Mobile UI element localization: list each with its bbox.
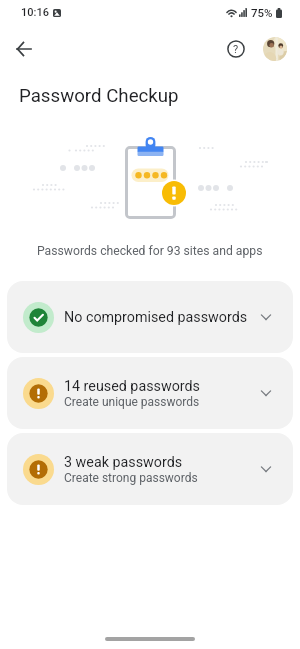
staticText: ? bbox=[233, 43, 239, 56]
staticText: 10:16 bbox=[21, 6, 49, 19]
staticText: 3 weak passwords bbox=[64, 454, 183, 471]
button[interactable]: No compromised passwords bbox=[7, 281, 293, 353]
staticText: 75% bbox=[251, 6, 273, 19]
staticText: Create strong passwords bbox=[64, 471, 198, 485]
staticText: 14 reused passwords bbox=[64, 378, 200, 395]
staticText: No compromised passwords bbox=[64, 309, 248, 326]
staticText: Create unique passwords bbox=[64, 395, 200, 409]
button[interactable]: Back bbox=[6, 31, 42, 67]
button[interactable]: 3 weak passwords bbox=[7, 433, 293, 505]
staticText: Passwords checked for 93 sites and apps bbox=[37, 244, 263, 258]
button[interactable]: Help bbox=[222, 35, 250, 63]
staticText: Password Checkup bbox=[19, 85, 179, 107]
button[interactable]: Account bbox=[263, 37, 287, 61]
button[interactable]: 14 reused passwords bbox=[7, 357, 293, 429]
